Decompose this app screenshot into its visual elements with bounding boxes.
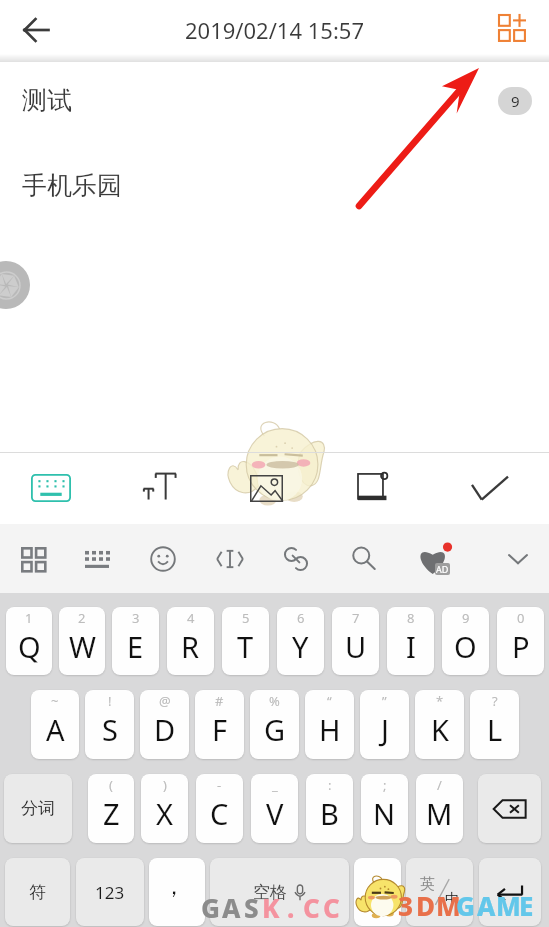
staticText: E <box>519 888 534 923</box>
staticText: C <box>303 890 320 925</box>
staticText: G <box>264 710 286 749</box>
button[interactable]: Camera <box>0 261 30 309</box>
button[interactable]: W <box>59 607 105 675</box>
staticText: “ <box>327 692 332 710</box>
button[interactable]: Q <box>6 607 52 675</box>
staticText: C <box>210 794 229 833</box>
staticText: * <box>436 692 444 710</box>
button[interactable]: Font size <box>105 452 213 524</box>
staticText: 中 <box>445 890 460 909</box>
button[interactable]: Done <box>436 452 544 524</box>
staticText: K <box>262 890 280 925</box>
staticText: M <box>426 794 453 833</box>
button[interactable]: F <box>195 690 244 759</box>
button[interactable]: Note paper <box>320 452 428 524</box>
staticText: M <box>436 888 456 923</box>
button[interactable]: Cursor <box>197 524 263 593</box>
button[interactable]: Collapse <box>485 524 549 593</box>
staticText: F <box>212 710 228 749</box>
button[interactable]: X <box>141 774 188 843</box>
button[interactable]: H <box>305 690 354 759</box>
button[interactable]: S <box>85 690 134 759</box>
button[interactable]: Search <box>330 524 396 593</box>
staticText: AD <box>436 563 449 575</box>
button[interactable]: A <box>31 690 79 759</box>
staticText: - <box>217 776 222 794</box>
button[interactable]: T <box>222 607 269 675</box>
staticText: E <box>127 627 144 666</box>
staticText: . <box>287 890 295 925</box>
button[interactable]: E <box>112 607 159 675</box>
button[interactable]: B <box>306 774 353 843</box>
button[interactable]: Symbols <box>5 858 70 926</box>
staticText: 英 <box>420 875 435 894</box>
staticText: G <box>456 888 476 923</box>
button[interactable]: Add template <box>488 4 536 52</box>
button[interactable]: Keyboard layout <box>64 524 130 593</box>
staticText: T <box>237 627 254 666</box>
staticText: U <box>345 627 367 666</box>
staticText: R <box>181 627 200 666</box>
staticText: 5 <box>242 609 250 627</box>
button[interactable]: Sticker <box>354 858 401 926</box>
button[interactable]: Language <box>406 858 473 926</box>
button[interactable]: Comma <box>149 858 205 926</box>
staticText: N <box>373 794 396 833</box>
button[interactable]: I <box>387 607 434 675</box>
button[interactable]: J <box>360 690 409 759</box>
staticText: A <box>222 890 241 925</box>
staticText: 1 <box>25 609 33 627</box>
staticText: 3 <box>132 609 140 627</box>
staticText: 9 <box>462 609 470 627</box>
staticText: D <box>416 888 436 923</box>
button[interactable]: Numbers <box>76 858 144 926</box>
staticText: G <box>201 890 221 925</box>
button[interactable]: O <box>442 607 489 675</box>
staticText: K <box>431 710 449 749</box>
staticText: 分词 <box>21 798 55 819</box>
button[interactable]: Space <box>210 858 349 926</box>
staticText: A <box>46 710 65 749</box>
staticText: # <box>215 692 224 710</box>
button[interactable]: Back <box>11 5 61 55</box>
button[interactable]: V <box>251 774 298 843</box>
staticText: ; <box>383 776 387 794</box>
staticText: 8 <box>407 609 415 627</box>
button[interactable]: Keyboard <box>0 452 105 524</box>
button[interactable]: U <box>332 607 379 675</box>
button[interactable]: C <box>196 774 243 843</box>
button[interactable]: Grid <box>0 524 65 593</box>
staticText: ” <box>382 692 387 710</box>
button[interactable]: N <box>361 774 408 843</box>
button[interactable]: L <box>470 690 519 759</box>
staticText: S <box>102 710 118 749</box>
button[interactable]: Clipboard <box>263 524 329 593</box>
staticText: % <box>269 692 280 710</box>
staticText: H <box>319 710 341 749</box>
button[interactable]: K <box>415 690 464 759</box>
staticText: 6 <box>297 609 305 627</box>
button[interactable]: Insert image <box>212 452 320 524</box>
button[interactable]: Enter <box>479 858 541 926</box>
button[interactable]: G <box>250 690 299 759</box>
button[interactable]: M <box>416 774 463 843</box>
staticText: 4 <box>187 609 195 627</box>
staticText: A <box>477 888 496 923</box>
button[interactable]: Count 9 <box>498 87 532 115</box>
staticText: 2 <box>78 609 86 627</box>
staticText: W <box>69 627 96 666</box>
staticText: 符 <box>29 882 46 903</box>
button[interactable]: D <box>140 690 189 759</box>
button[interactable]: R <box>167 607 214 675</box>
button[interactable]: Favorite ad <box>402 524 468 593</box>
button[interactable]: Y <box>277 607 324 675</box>
button[interactable]: P <box>497 607 544 675</box>
staticText: 123 <box>95 881 125 904</box>
button[interactable]: Word split <box>4 774 72 843</box>
staticText: @ <box>159 692 171 710</box>
button[interactable]: Emoji <box>130 524 196 593</box>
button[interactable]: Backspace <box>478 774 541 843</box>
staticText: / <box>437 776 442 794</box>
button[interactable]: Z <box>88 774 134 843</box>
staticText: : <box>328 776 332 794</box>
